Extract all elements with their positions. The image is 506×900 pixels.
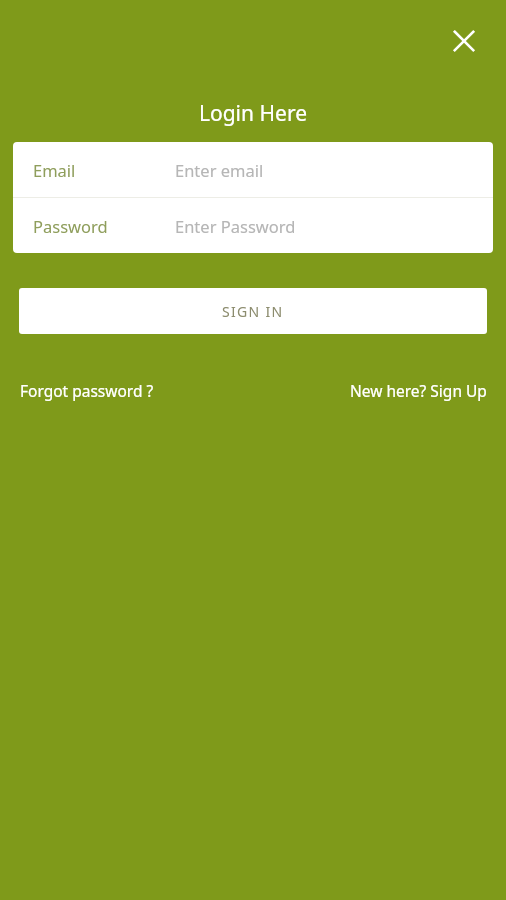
staticText: Enter email [175,159,264,181]
button[interactable]: SIGN IN [19,288,487,334]
button[interactable]: Email [13,142,493,197]
staticText: Email [33,159,76,181]
button[interactable]: Close [440,17,488,65]
staticText: SIGN IN [222,302,284,321]
staticText: Password [33,215,108,237]
button[interactable]: New here? Sign Up [350,376,487,404]
staticText: Enter Password [175,215,296,237]
staticText: Login Here [199,99,307,128]
button[interactable]: Forgot password ? [20,376,154,404]
button[interactable]: Password [13,198,493,253]
staticText: Forgot password ? [20,380,154,401]
staticText: New here? Sign Up [350,380,487,401]
